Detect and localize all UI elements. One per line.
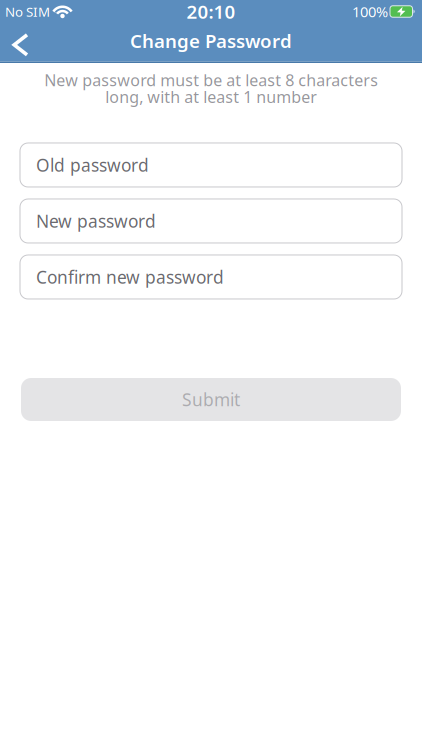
staticText: Confirm new password: [36, 265, 224, 288]
staticText: Change Password: [130, 28, 292, 53]
button[interactable]: Back: [0, 23, 48, 61]
staticText: Submit: [182, 388, 240, 411]
button[interactable]: Submit: [0, 378, 422, 421]
staticText: New password must be at least 8 characte…: [44, 69, 378, 107]
staticText: Old password: [36, 153, 149, 176]
staticText: 20:10: [186, 0, 235, 24]
staticText: 100%: [352, 2, 388, 21]
button[interactable]: Old password: [20, 143, 402, 187]
staticText: New password: [36, 209, 156, 232]
button[interactable]: New password: [20, 199, 402, 243]
staticText: No SIM: [5, 3, 50, 20]
button[interactable]: Confirm new password: [20, 255, 402, 299]
